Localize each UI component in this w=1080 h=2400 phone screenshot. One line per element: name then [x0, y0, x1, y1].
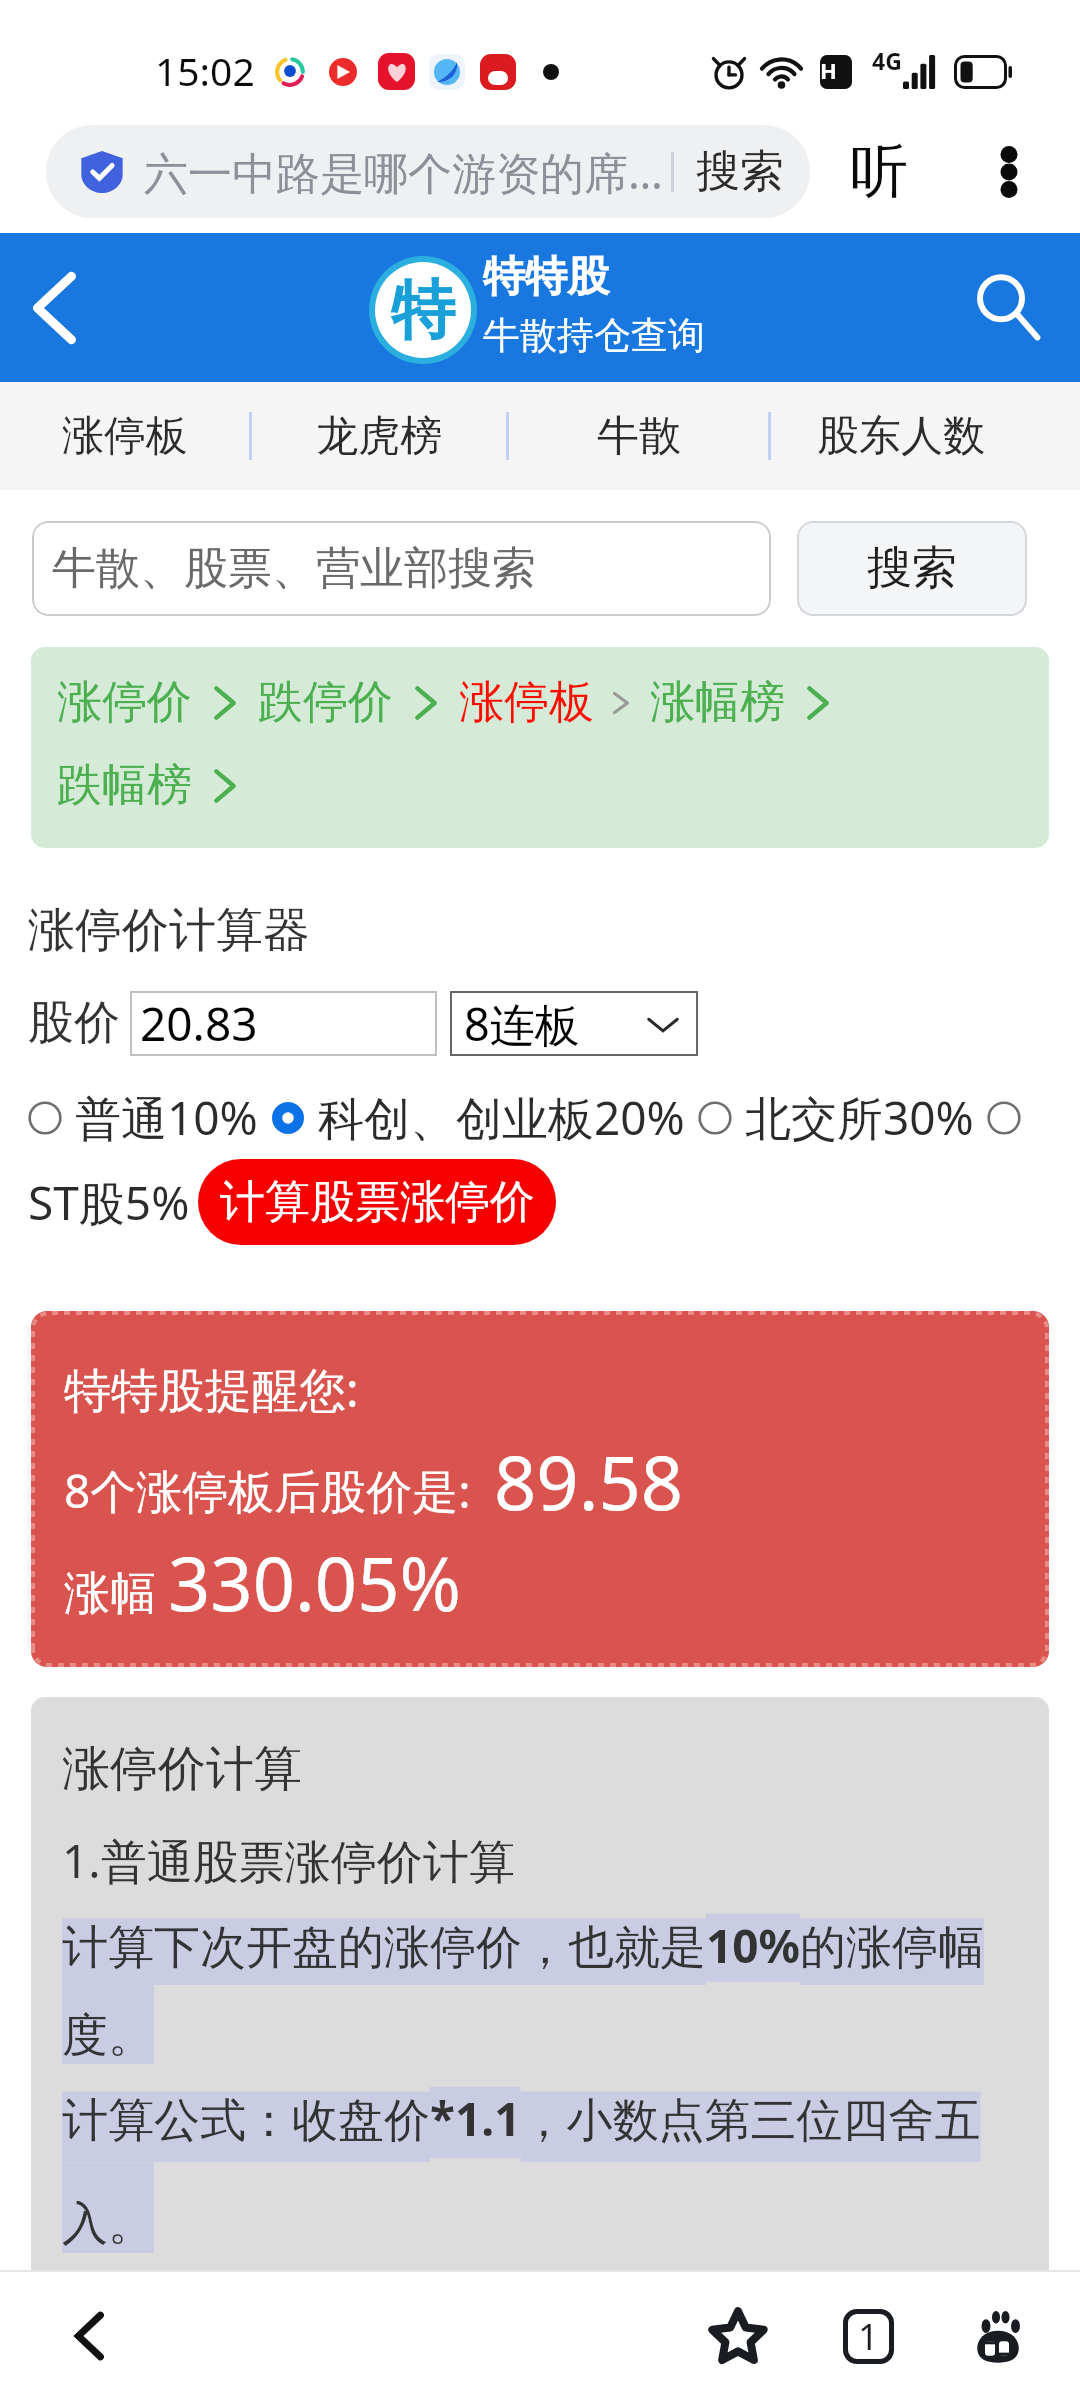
staticText: 1.普通股票涨停价计算	[62, 1829, 515, 1892]
staticText: 牛散、股票、营业部搜索	[52, 541, 536, 596]
button[interactable]: Search	[958, 258, 1058, 358]
staticText: 搜索	[867, 540, 957, 597]
staticText: 4G	[872, 45, 902, 76]
button[interactable]: 计算股票涨停价	[198, 1159, 556, 1245]
button[interactable]: 股东人数	[771, 382, 1031, 490]
staticText: 330.05%	[168, 1532, 461, 1633]
button[interactable]: 8连板	[450, 991, 698, 1056]
button[interactable]: More options	[978, 141, 1040, 203]
staticText: 计算下次开盘的涨停价，也就是10%的涨停幅度。	[62, 1914, 1021, 2064]
button[interactable]: 牛散、股票、营业部搜索	[32, 521, 771, 616]
staticText: 牛散持仓查询	[483, 312, 705, 359]
staticText: 8个涨停板后股价是:	[64, 1459, 471, 1522]
staticText: 听	[850, 135, 908, 208]
staticText: 龙虎榜	[316, 410, 442, 463]
staticText: HD	[820, 55, 852, 89]
staticText: 股东人数	[817, 410, 985, 463]
button[interactable]: 跌停价	[258, 674, 393, 731]
button[interactable]: Tabs	[818, 2286, 918, 2386]
button[interactable]: Back	[40, 2286, 140, 2386]
staticText: 8连板	[464, 993, 580, 1054]
staticText: 北交所30%	[745, 1086, 974, 1149]
staticText: 特特股	[483, 251, 609, 304]
staticText: 特特股提醒您:	[64, 1357, 359, 1421]
staticText: 跌幅榜	[57, 757, 192, 814]
staticText: 涨停价计算	[62, 1739, 302, 1799]
staticText: 涨停价	[57, 674, 192, 731]
staticText: 涨幅榜	[650, 674, 785, 731]
staticText: 跌停价	[258, 674, 393, 731]
staticText: 涨幅	[64, 1565, 156, 1623]
staticText: 普通10%	[75, 1086, 258, 1149]
staticText: 特	[391, 270, 455, 351]
button[interactable]: 听	[842, 127, 916, 216]
button[interactable]: Baidu home	[948, 2286, 1048, 2386]
button[interactable]: Back	[4, 258, 104, 358]
staticText: 搜索	[696, 144, 784, 199]
staticText: 涨停板	[459, 674, 594, 731]
staticText: 六一中路是哪个游资的席…	[144, 142, 663, 202]
staticText: 89.58	[494, 1431, 684, 1532]
staticText: 股价	[28, 994, 120, 1052]
staticText: 涨停价计算器	[28, 901, 310, 960]
button[interactable]: 跌幅榜	[57, 757, 192, 814]
staticText: ST股5%	[28, 1171, 190, 1234]
staticText: 15:02	[155, 44, 255, 97]
button[interactable]: 涨幅榜	[650, 674, 785, 731]
button[interactable]: 牛散	[509, 382, 768, 490]
staticText: 20.83	[140, 992, 258, 1055]
button[interactable]: 涨停板	[0, 382, 249, 490]
button[interactable]: 搜索	[797, 521, 1027, 616]
button[interactable]: 涨停价	[57, 674, 192, 731]
button[interactable]: 涨停板	[459, 674, 594, 731]
staticText: 计算股票涨停价	[220, 1174, 535, 1231]
staticText: 科创、创业板20%	[318, 1086, 685, 1149]
button[interactable]: 六一中路是哪个游资的席…	[46, 125, 810, 218]
button[interactable]: 20.83	[130, 991, 437, 1056]
staticText: 计算公式：收盘价*1.1，小数点第三位四舍五入。	[62, 2087, 1021, 2253]
staticText: 牛散	[597, 410, 681, 463]
staticText: 1	[858, 2312, 879, 2361]
button[interactable]: 龙虎榜	[252, 382, 506, 490]
staticText: 涨停板	[62, 410, 188, 463]
button[interactable]: Favorite	[688, 2286, 788, 2386]
